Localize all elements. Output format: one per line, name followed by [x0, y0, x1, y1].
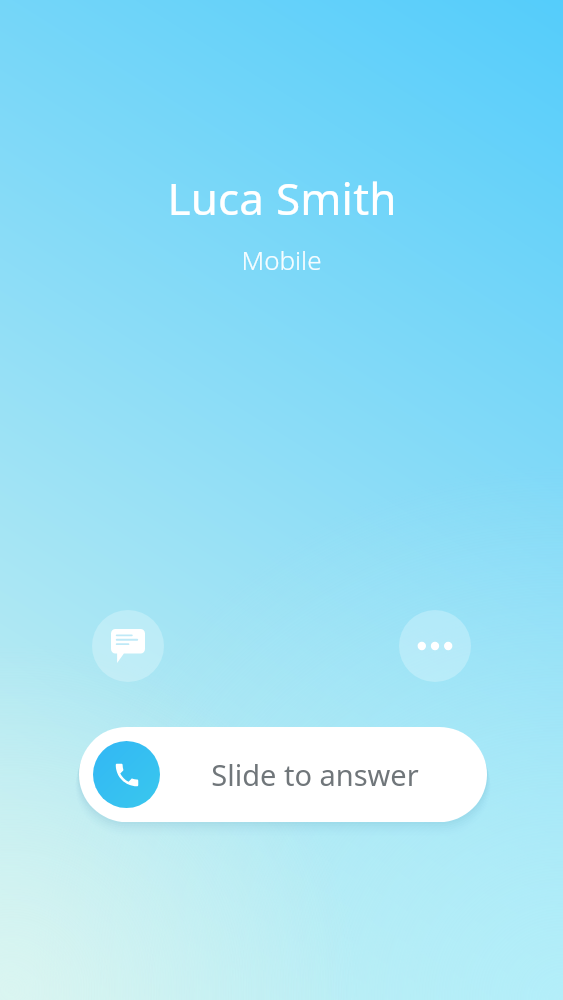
staticText: Slide to answer: [211, 755, 419, 794]
staticText: Luca Smith: [167, 168, 397, 228]
button[interactable]: More options: [399, 610, 471, 682]
staticText: Mobile: [241, 242, 322, 277]
button[interactable]: Slide to answer: [79, 727, 487, 822]
button[interactable]: Answer call: [93, 741, 160, 808]
button[interactable]: Send message: [92, 610, 164, 682]
